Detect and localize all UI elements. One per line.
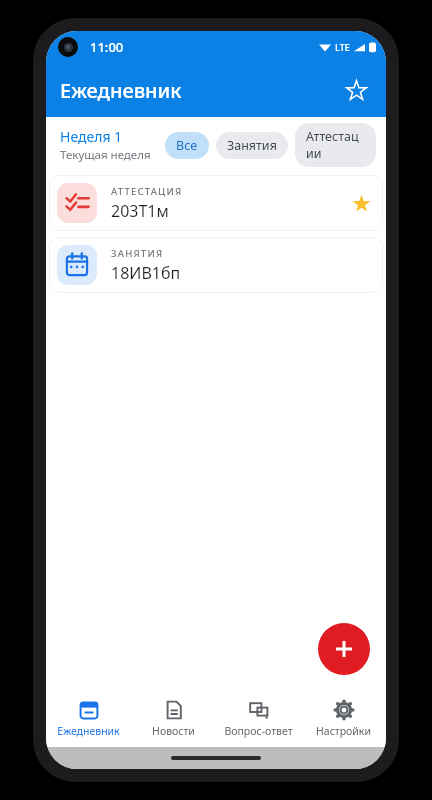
staticText: Новости [152,724,195,738]
staticText: Ежедневник [60,77,182,104]
staticText: 11:00 [90,38,124,56]
button[interactable]: Новости [131,691,216,747]
staticText: Занятия [227,137,277,154]
button[interactable]: Favorites [336,70,376,110]
button[interactable]: Неделя 1 [60,127,151,163]
staticText: 203Т1м [111,200,169,222]
button[interactable]: Все [165,132,209,159]
staticText: 18ИВ1бп [111,262,181,284]
staticText: Настройки [316,724,371,738]
button[interactable]: Вопрос-ответ [216,691,301,747]
button[interactable]: Аттестации [295,123,376,167]
staticText: LTE [335,41,350,53]
staticText: Вопрос-ответ [224,724,293,738]
button[interactable]: ЗАНЯТИЯ [49,237,383,293]
staticText: Все [176,137,198,154]
button[interactable]: Add [318,623,370,675]
button[interactable]: Занятия [216,132,288,159]
button[interactable]: Настройки [301,691,386,747]
staticText: Текущая неделя [60,147,151,163]
staticText: Ежедневник [57,724,120,738]
staticText: АТТЕСТАЦИЯ [111,185,183,198]
button[interactable]: Ежедневник [46,691,131,747]
button[interactable]: Favorite [347,189,375,217]
staticText: Аттестации [306,128,365,162]
staticText: Неделя 1 [60,127,123,146]
staticText: ЗАНЯТИЯ [111,247,164,260]
button[interactable]: АТТЕСТАЦИЯ [49,175,383,231]
